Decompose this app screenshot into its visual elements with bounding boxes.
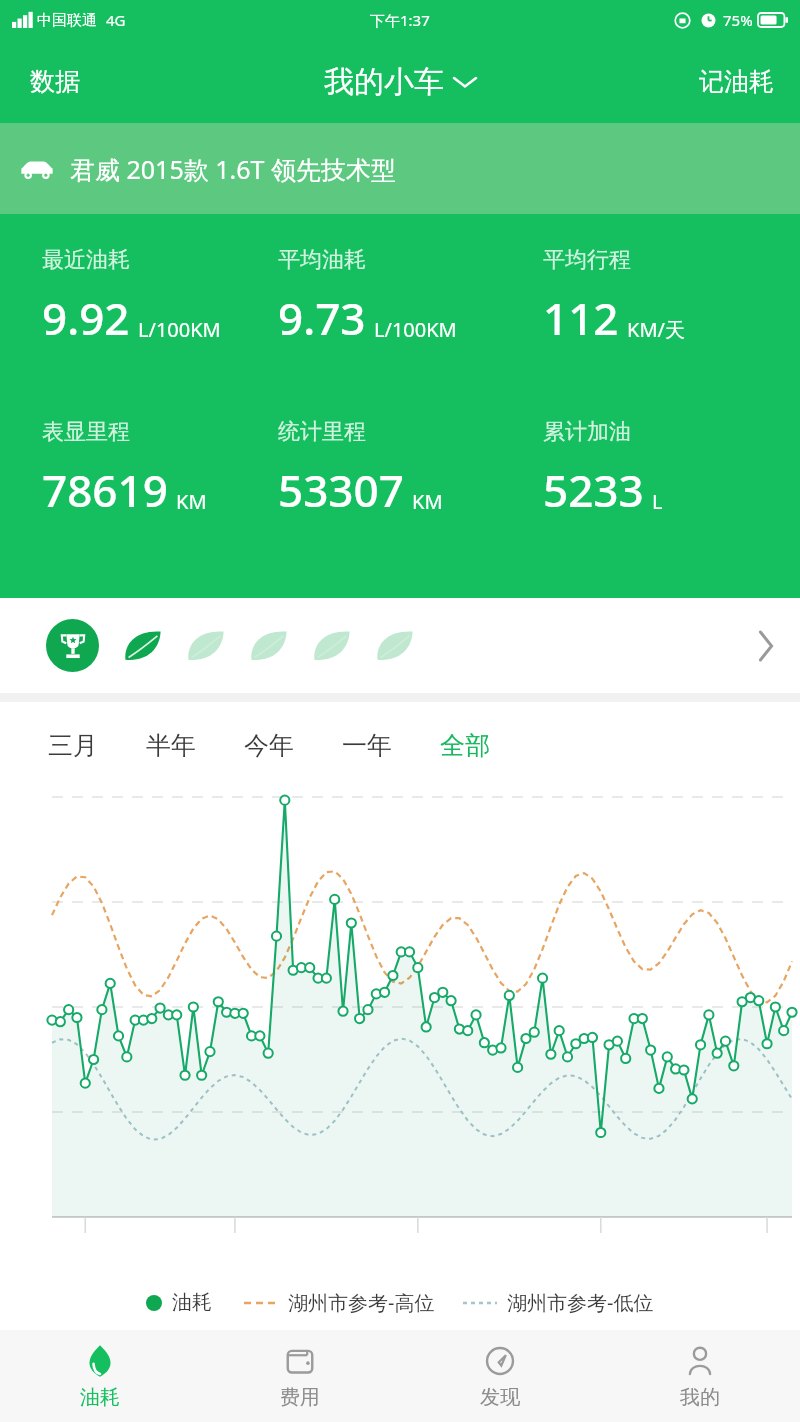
staticText: 平均油耗 <box>278 246 366 274</box>
staticText: 9.73 <box>278 288 366 348</box>
staticText: 全部 <box>440 730 490 761</box>
button[interactable]: 平均行程 <box>543 246 800 348</box>
button[interactable]: 君威 2015款 1.6T 领先技术型 <box>0 123 800 214</box>
button[interactable]: 平均油耗 <box>278 246 533 348</box>
staticText: 75% <box>723 10 753 30</box>
staticText: 我的 <box>680 1385 720 1410</box>
staticText: 下午1:37 <box>370 10 430 30</box>
button[interactable]: 费用 <box>200 1330 400 1422</box>
button[interactable]: More badges <box>0 598 800 693</box>
staticText: 今年 <box>244 730 294 761</box>
button[interactable]: 数据 <box>0 52 110 111</box>
staticText: 中国联通 <box>37 11 97 30</box>
staticText: 数据 <box>30 66 80 97</box>
staticText: 油耗 <box>80 1385 120 1410</box>
staticText: KM <box>412 488 443 515</box>
staticText: 9.92 <box>42 288 130 348</box>
staticText: 平均行程 <box>543 246 631 274</box>
staticText: 表显里程 <box>42 418 130 446</box>
button[interactable]: 全部 <box>426 724 504 767</box>
staticText: 发现 <box>480 1385 520 1410</box>
staticText: 我的小车 <box>324 63 444 101</box>
staticText: 三月 <box>48 730 98 761</box>
button[interactable]: 最近油耗 <box>42 246 266 348</box>
staticText: 君威 2015款 1.6T 领先技术型 <box>70 152 396 186</box>
staticText: 53307 <box>278 460 404 520</box>
button[interactable]: 今年 <box>230 724 308 767</box>
button[interactable]: 发现 <box>400 1330 600 1422</box>
button[interactable]: 一年 <box>328 724 406 767</box>
staticText: 湖州市参考-高位 <box>288 1289 435 1316</box>
staticText: 累计加油 <box>543 418 631 446</box>
staticText: 最近油耗 <box>42 246 130 274</box>
staticText: 湖州市参考-低位 <box>507 1289 654 1316</box>
staticText: L <box>652 488 663 515</box>
button[interactable]: 半年 <box>132 724 210 767</box>
staticText: 一年 <box>342 730 392 761</box>
staticText: KM <box>176 488 207 515</box>
button[interactable]: 统计里程 <box>278 418 533 520</box>
button[interactable]: 我的小车 <box>308 53 492 111</box>
button[interactable]: 记油耗 <box>673 52 800 111</box>
staticText: 油耗 <box>172 1290 212 1315</box>
staticText: 记油耗 <box>699 66 774 97</box>
staticText: 112 <box>543 288 619 348</box>
staticText: 78619 <box>42 460 168 520</box>
button[interactable]: 表显里程 <box>42 418 266 520</box>
staticText: 半年 <box>146 730 196 761</box>
staticText: L/100KM <box>138 316 221 343</box>
staticText: 费用 <box>280 1385 320 1410</box>
staticText: 统计里程 <box>278 418 366 446</box>
staticText: 5233 <box>543 460 644 520</box>
other: More badges <box>758 632 774 660</box>
staticText: KM/天 <box>627 316 685 343</box>
staticText: 4G <box>106 10 126 30</box>
staticText: L/100KM <box>374 316 457 343</box>
button[interactable]: 油耗 <box>0 1330 200 1422</box>
button[interactable]: 三月 <box>34 724 112 767</box>
button[interactable]: 我的 <box>600 1330 800 1422</box>
button[interactable]: 累计加油 <box>543 418 800 520</box>
